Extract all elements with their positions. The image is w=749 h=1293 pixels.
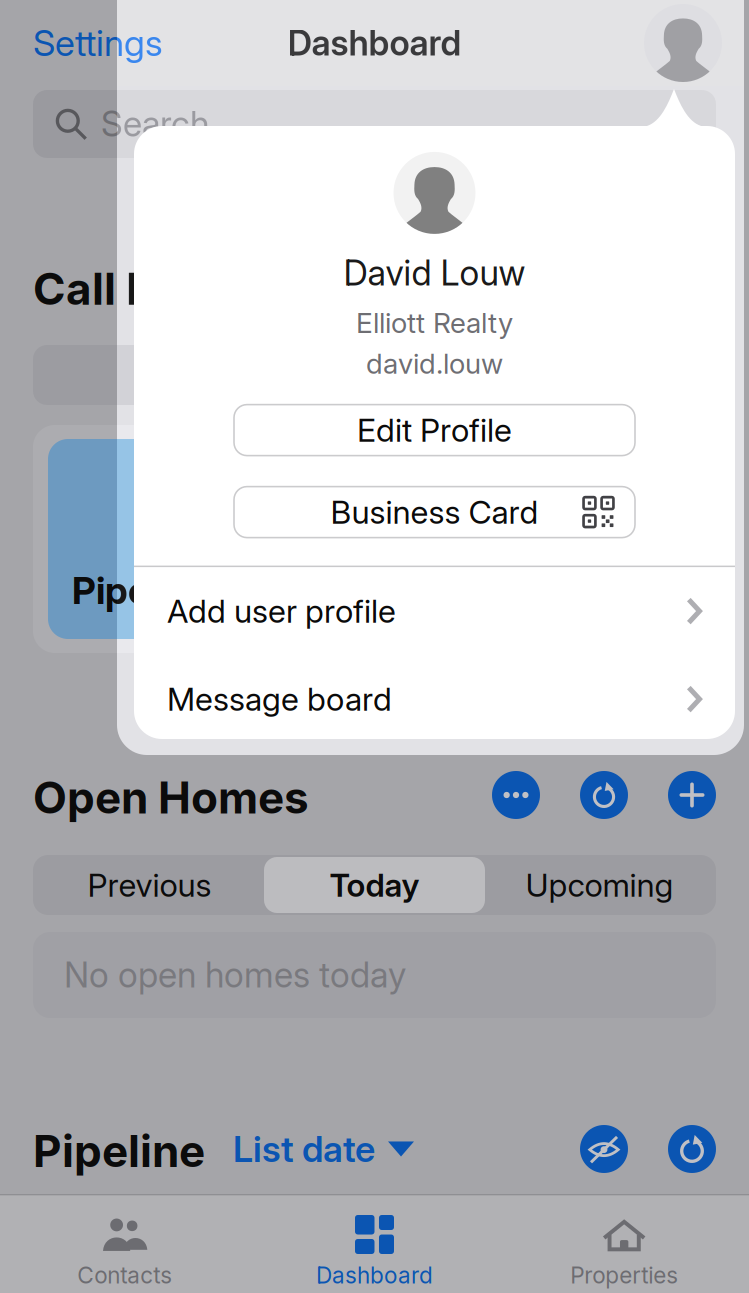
- staticText: List date: [233, 1127, 375, 1171]
- staticText: Dashboard: [287, 22, 461, 64]
- staticText: Contacts: [77, 1261, 172, 1289]
- staticText: Call List: [33, 262, 204, 315]
- staticText: Elliott Realty: [356, 306, 513, 340]
- staticText: Pipeline: [72, 568, 210, 613]
- button[interactable]: Search: [33, 90, 716, 158]
- button[interactable]: Edit Profile: [234, 405, 635, 456]
- button[interactable]: Dashboard: [250, 1195, 499, 1293]
- button[interactable]: Your profile: [644, 4, 749, 82]
- button[interactable]: Hide pipeline: [580, 1125, 628, 1173]
- staticText: Upcoming: [525, 866, 673, 904]
- button[interactable]: Settings: [0, 9, 179, 77]
- staticText: Today: [329, 866, 419, 904]
- staticText: Add user profile: [167, 592, 396, 630]
- staticText: Dashboard: [316, 1261, 433, 1289]
- button[interactable]: Pipeline: [48, 439, 348, 639]
- button[interactable]: More options: [492, 771, 540, 819]
- staticText: Upcoming: [525, 866, 673, 904]
- staticText: Previous: [87, 866, 211, 904]
- button[interactable]: List date: [205, 1117, 422, 1181]
- button[interactable]: My calls: [33, 345, 716, 405]
- staticText: Contacts: [77, 1261, 172, 1289]
- staticText: Today: [329, 866, 419, 904]
- staticText: Business Card: [330, 493, 538, 531]
- button[interactable]: Contacts: [0, 1195, 250, 1293]
- staticText: Pipeline: [72, 568, 210, 613]
- button[interactable]: Upcoming: [485, 855, 714, 915]
- staticText: Search: [101, 103, 209, 145]
- button[interactable]: Previous: [35, 855, 264, 915]
- staticText: Pipeline: [33, 1124, 205, 1178]
- button[interactable]: Pipeline: [48, 439, 348, 639]
- button[interactable]: More options: [492, 771, 540, 819]
- button[interactable]: Contacts: [0, 1195, 250, 1293]
- button[interactable]: Properties: [499, 1195, 749, 1293]
- button[interactable]: Your profile: [644, 4, 749, 82]
- staticText: Edit Profile: [357, 411, 512, 449]
- staticText: Open Homes: [33, 771, 309, 824]
- button[interactable]: [366, 439, 666, 639]
- staticText: List date: [233, 1127, 375, 1171]
- staticText: No open homes today: [64, 954, 406, 996]
- staticText: Properties: [570, 1261, 678, 1289]
- staticText: Call List: [33, 262, 204, 315]
- staticText: Search: [101, 103, 209, 145]
- button[interactable]: Previous: [35, 855, 264, 915]
- staticText: Properties: [570, 1261, 678, 1289]
- staticText: Pipeline: [33, 1124, 205, 1178]
- button[interactable]: Add user profile: [134, 567, 735, 655]
- button[interactable]: Add open home: [668, 771, 716, 819]
- staticText: Settings: [33, 21, 163, 65]
- staticText: david.louw: [366, 347, 503, 381]
- button[interactable]: Refresh: [580, 771, 628, 819]
- button[interactable]: Hide pipeline: [580, 1125, 628, 1173]
- button[interactable]: Today: [264, 857, 485, 913]
- staticText: Dashboard: [316, 1261, 433, 1289]
- button[interactable]: Refresh: [580, 771, 628, 819]
- button[interactable]: Add open home: [668, 771, 716, 819]
- staticText: Dashboard: [287, 22, 461, 64]
- staticText: No open homes today: [64, 954, 406, 996]
- staticText: My calls: [312, 356, 436, 394]
- button[interactable]: Settings: [0, 9, 179, 77]
- button[interactable]: Upcoming: [485, 855, 714, 915]
- button[interactable]: Dashboard: [250, 1195, 499, 1293]
- button[interactable]: Today: [264, 857, 485, 913]
- button[interactable]: Refresh pipeline: [668, 1125, 716, 1173]
- staticText: David Louw: [343, 252, 525, 294]
- staticText: Settings: [33, 21, 163, 65]
- staticText: Open Homes: [33, 771, 309, 824]
- button[interactable]: Refresh pipeline: [668, 1125, 716, 1173]
- button[interactable]: Business Card: [234, 487, 635, 538]
- staticText: My calls: [312, 356, 436, 394]
- button[interactable]: My calls: [33, 345, 716, 405]
- button[interactable]: Message board: [134, 655, 735, 743]
- button[interactable]: Properties: [499, 1195, 749, 1293]
- staticText: Previous: [87, 866, 211, 904]
- button[interactable]: Search: [33, 90, 716, 158]
- staticText: Message board: [167, 680, 392, 718]
- button[interactable]: [366, 439, 666, 639]
- button[interactable]: List date: [205, 1117, 422, 1181]
